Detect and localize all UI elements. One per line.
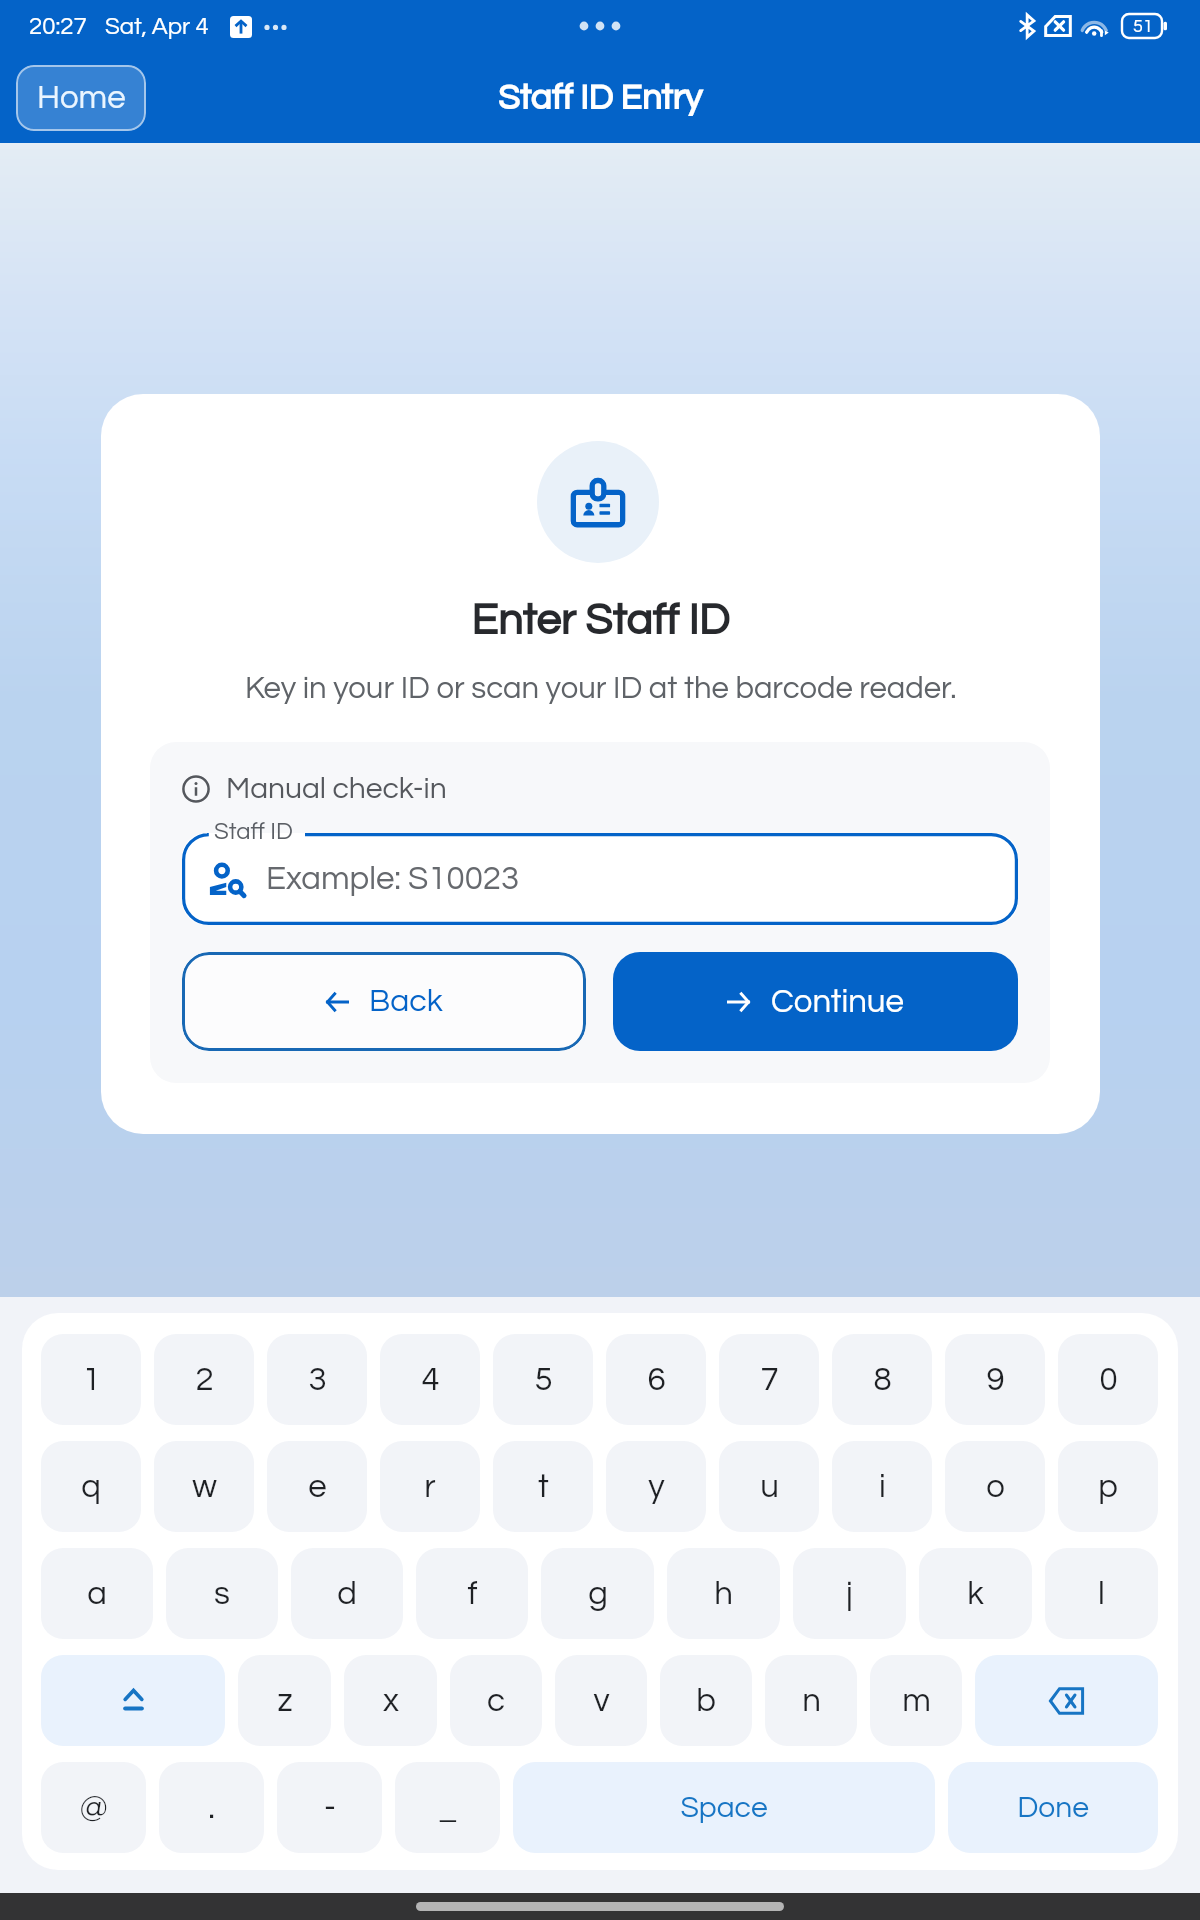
staticText: Example: S10023: [266, 862, 520, 896]
staticText: u: [760, 1470, 779, 1504]
staticText: Back: [369, 985, 443, 1018]
button[interactable]: k: [919, 1548, 1032, 1639]
button[interactable]: b: [660, 1655, 752, 1746]
staticText: Home: [37, 81, 126, 115]
button[interactable]: 4: [380, 1334, 480, 1425]
button[interactable]: @: [41, 1762, 146, 1853]
button[interactable]: 1: [41, 1334, 141, 1425]
staticText: h: [714, 1577, 733, 1611]
button[interactable]: 0: [1058, 1334, 1158, 1425]
staticText: x: [383, 1684, 399, 1718]
button[interactable]: g: [541, 1548, 654, 1639]
staticText: 1: [82, 1363, 101, 1397]
staticText: 0: [1099, 1363, 1118, 1397]
button[interactable]: p: [1058, 1441, 1158, 1532]
button[interactable]: 2: [154, 1334, 254, 1425]
button[interactable]: m: [870, 1655, 962, 1746]
staticText: d: [337, 1577, 357, 1611]
button[interactable]: i: [832, 1441, 932, 1532]
button[interactable]: Home: [16, 65, 146, 131]
button[interactable]: -: [277, 1762, 382, 1853]
button[interactable]: o: [945, 1441, 1045, 1532]
staticText: o: [986, 1470, 1005, 1504]
button[interactable]: 3: [267, 1334, 367, 1425]
staticText: 6: [647, 1363, 666, 1397]
staticText: Staff ID: [214, 819, 293, 844]
button[interactable]: s: [166, 1548, 278, 1639]
button[interactable]: u: [719, 1441, 819, 1532]
staticText: i: [879, 1470, 886, 1504]
button[interactable]: w: [154, 1441, 254, 1532]
button[interactable]: e: [267, 1441, 367, 1532]
staticText: v: [593, 1684, 610, 1718]
staticText: g: [588, 1577, 608, 1611]
button[interactable]: y: [606, 1441, 706, 1532]
staticText: n: [802, 1684, 821, 1718]
button[interactable]: q: [41, 1441, 141, 1532]
staticText: Sat, Apr 4: [105, 14, 209, 39]
button[interactable]: 9: [945, 1334, 1045, 1425]
button[interactable]: z: [238, 1655, 331, 1746]
button[interactable]: _: [395, 1762, 500, 1853]
staticText: q: [81, 1470, 101, 1504]
staticText: 4: [421, 1363, 440, 1397]
staticText: c: [487, 1684, 505, 1718]
staticText: 3: [308, 1363, 327, 1397]
button[interactable]: d: [291, 1548, 403, 1639]
staticText: Manual check-in: [226, 773, 447, 804]
button[interactable]: Backspace: [975, 1655, 1158, 1746]
staticText: b: [696, 1684, 716, 1718]
staticText: Enter Staff ID: [471, 598, 730, 643]
button[interactable]: v: [555, 1655, 647, 1746]
staticText: w: [192, 1470, 217, 1504]
staticText: -: [324, 1791, 336, 1825]
staticText: m: [902, 1684, 931, 1718]
button[interactable]: j: [793, 1548, 906, 1639]
button[interactable]: c: [450, 1655, 542, 1746]
staticText: @: [79, 1791, 108, 1825]
staticText: .: [208, 1791, 215, 1825]
staticText: 20:27: [29, 14, 87, 39]
staticText: z: [277, 1684, 293, 1718]
button[interactable]: n: [765, 1655, 857, 1746]
button[interactable]: a: [41, 1548, 153, 1639]
staticText: _: [438, 1791, 458, 1825]
staticText: y: [648, 1470, 665, 1504]
button[interactable]: f: [416, 1548, 528, 1639]
staticText: f: [467, 1577, 478, 1611]
staticText: 51: [1133, 17, 1153, 36]
button[interactable]: Space: [513, 1762, 935, 1853]
button[interactable]: Continue: [613, 952, 1018, 1051]
staticText: Done: [1017, 1792, 1089, 1823]
button[interactable]: Shift: [41, 1655, 225, 1746]
staticText: 2: [195, 1363, 214, 1397]
button[interactable]: l: [1045, 1548, 1158, 1639]
button[interactable]: x: [344, 1655, 437, 1746]
button[interactable]: 7: [719, 1334, 819, 1425]
staticText: Staff ID Entry: [498, 80, 702, 116]
staticText: e: [308, 1470, 327, 1504]
staticText: Key in your ID or scan your ID at the ba…: [245, 673, 957, 705]
button[interactable]: Done: [948, 1762, 1158, 1853]
staticText: j: [846, 1577, 853, 1611]
staticText: 7: [760, 1363, 779, 1397]
staticText: 8: [873, 1363, 892, 1397]
staticText: s: [214, 1577, 230, 1611]
button[interactable]: Back: [182, 952, 586, 1051]
staticText: 5: [534, 1363, 553, 1397]
button[interactable]: t: [493, 1441, 593, 1532]
staticText: Space: [680, 1792, 768, 1823]
button[interactable]: 6: [606, 1334, 706, 1425]
staticText: 9: [986, 1363, 1005, 1397]
button[interactable]: r: [380, 1441, 480, 1532]
staticText: a: [87, 1577, 107, 1611]
staticText: l: [1098, 1577, 1105, 1611]
button[interactable]: .: [159, 1762, 264, 1853]
button[interactable]: 8: [832, 1334, 932, 1425]
button[interactable]: 5: [493, 1334, 593, 1425]
staticText: p: [1098, 1470, 1118, 1504]
button[interactable]: h: [667, 1548, 780, 1639]
staticText: Continue: [771, 985, 904, 1019]
staticText: k: [967, 1577, 984, 1611]
staticText: r: [424, 1470, 436, 1504]
